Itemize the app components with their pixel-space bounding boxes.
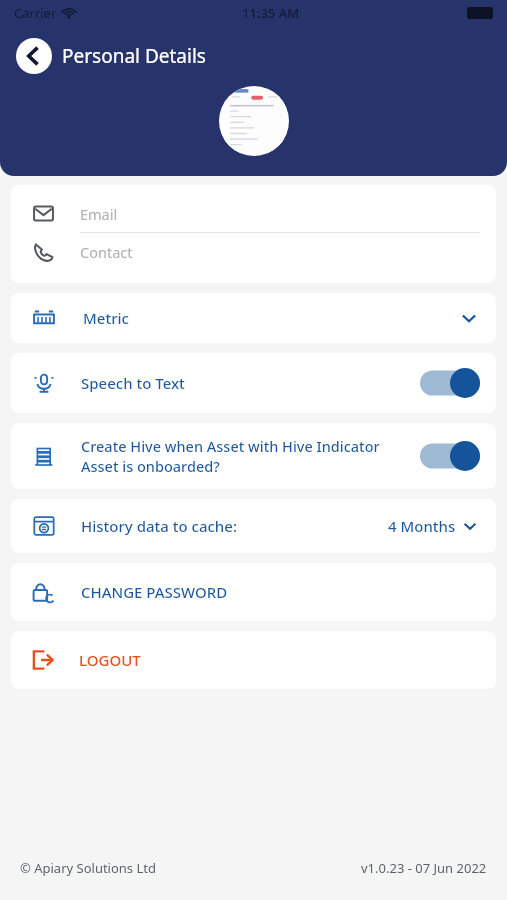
staticText: © Apiary Solutions Ltd	[20, 859, 156, 877]
staticText: 11:35 AM	[242, 4, 300, 22]
staticText: Email	[80, 204, 118, 224]
button[interactable]: Back	[16, 38, 52, 74]
staticText: Contact	[80, 242, 133, 262]
staticText: CHANGE PASSWORD	[81, 582, 228, 602]
button[interactable]: Toggle on	[420, 368, 480, 398]
button[interactable]: Contact	[33, 233, 480, 271]
button[interactable]: Create Hive when Asset with Hive Indicat…	[11, 423, 496, 489]
button[interactable]: LOGOUT	[11, 631, 496, 689]
staticText: 4 Months	[388, 516, 456, 536]
staticText: Carrier	[14, 4, 57, 22]
button[interactable]: Email	[33, 195, 480, 232]
staticText: Speech to Text	[81, 373, 185, 393]
button[interactable]: Profile photo	[219, 86, 289, 156]
button[interactable]: Metric	[11, 293, 496, 343]
button[interactable]: Speech to Text	[11, 353, 496, 413]
staticText: History data to cache:	[81, 516, 237, 536]
button[interactable]: Toggle on	[420, 441, 480, 471]
staticText: Create Hive when Asset with Hive Indicat…	[81, 436, 380, 476]
staticText: LOGOUT	[79, 650, 141, 670]
staticText: Personal Details	[62, 43, 206, 69]
staticText: v1.0.23 - 07 Jun 2022	[361, 859, 487, 877]
button[interactable]: CHANGE PASSWORD	[11, 563, 496, 621]
staticText: Metric	[83, 308, 129, 328]
button[interactable]: History data to cache:	[11, 499, 496, 553]
